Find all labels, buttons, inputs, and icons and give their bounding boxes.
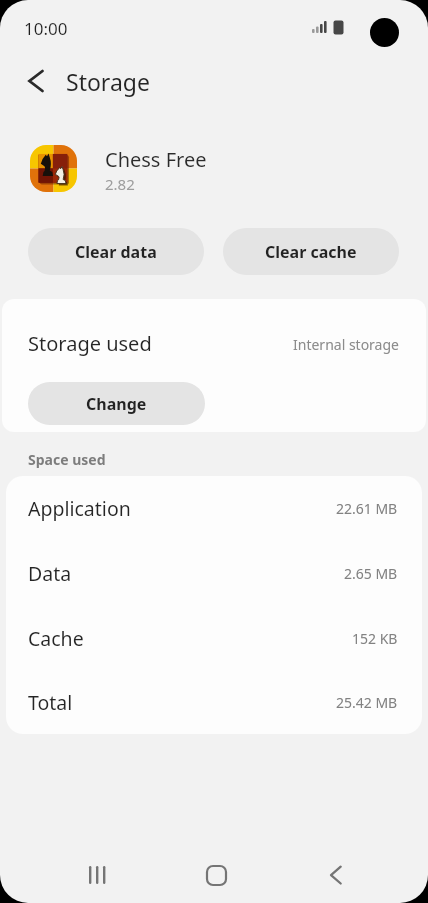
staticText: Clear data — [75, 241, 157, 263]
button[interactable] — [194, 854, 238, 898]
staticText: Cache — [28, 625, 84, 652]
button[interactable] — [315, 854, 357, 896]
staticText: Total — [28, 689, 73, 716]
button[interactable]: Clear cache — [223, 228, 399, 275]
button[interactable]: Data — [28, 541, 398, 606]
staticText: 22.61 MB — [336, 499, 398, 518]
staticText: Storage used — [28, 330, 152, 357]
staticText: 2.65 MB — [344, 564, 398, 583]
button[interactable]: Clear data — [28, 228, 204, 275]
staticText: Storage — [66, 66, 150, 97]
staticText: Application — [28, 495, 131, 522]
button[interactable] — [76, 854, 118, 896]
staticText: Space used — [28, 450, 106, 469]
button[interactable]: Change — [28, 382, 205, 425]
staticText: 2.82 — [105, 174, 135, 194]
button[interactable]: Total — [28, 671, 398, 734]
button[interactable] — [16, 62, 54, 100]
staticText: 25.42 MB — [336, 693, 398, 712]
staticText: Chess Free — [105, 146, 207, 173]
staticText: 152 KB — [352, 629, 398, 648]
staticText: Data — [28, 560, 72, 587]
staticText: Change — [86, 393, 147, 415]
staticText: Internal storage — [293, 335, 399, 354]
button[interactable]: Cache — [28, 606, 398, 671]
button[interactable]: Application — [28, 476, 398, 541]
staticText: Clear cache — [265, 241, 357, 263]
staticText: 10:00 — [24, 17, 68, 40]
